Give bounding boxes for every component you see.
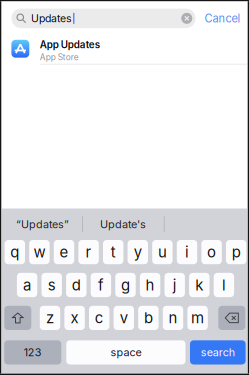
staticText: y [134, 243, 142, 261]
button[interactable]: App Updates [2, 28, 247, 64]
staticText: o [207, 243, 216, 261]
staticText: “Updates” [16, 218, 69, 231]
staticText: k [195, 276, 203, 294]
button[interactable]: Numbers [4, 340, 61, 364]
button[interactable]: p [226, 240, 246, 264]
button[interactable]: k [189, 273, 209, 297]
staticText: 123 [24, 346, 42, 359]
button[interactable]: a [17, 273, 37, 297]
staticText: n [168, 309, 177, 327]
button[interactable]: m [187, 306, 208, 330]
staticText: b [144, 309, 153, 327]
staticText: u [158, 243, 167, 261]
staticText: p [232, 243, 241, 261]
staticText: App Store [40, 52, 79, 62]
staticText: Update's [100, 218, 146, 231]
button[interactable]: Clear text [181, 13, 192, 24]
button[interactable]: j [164, 273, 185, 297]
button[interactable]: o [201, 240, 222, 264]
button[interactable]: Delete [218, 306, 245, 330]
staticText: App Updates [40, 39, 100, 51]
button[interactable]: e [54, 240, 74, 264]
button[interactable]: q [5, 240, 25, 264]
staticText: Updates [31, 12, 72, 25]
staticText: space [110, 346, 141, 359]
staticText: a [23, 276, 31, 294]
button[interactable]: r [78, 240, 99, 264]
staticText: g [121, 276, 130, 294]
button[interactable]: x [64, 306, 85, 330]
button[interactable]: l [214, 273, 234, 297]
button[interactable]: w [29, 240, 50, 264]
button[interactable]: t [103, 240, 123, 264]
button[interactable]: s [41, 273, 62, 297]
button[interactable]: g [115, 273, 136, 297]
staticText: v [120, 309, 128, 327]
staticText: w [33, 243, 45, 261]
staticText: l [222, 276, 226, 294]
button[interactable]: n [163, 306, 183, 330]
button[interactable]: Shift [4, 306, 31, 330]
button[interactable]: h [140, 273, 160, 297]
button[interactable]: d [66, 273, 86, 297]
staticText: j [173, 276, 177, 294]
staticText: f [98, 276, 104, 294]
button[interactable]: b [138, 306, 159, 330]
button[interactable]: i [177, 240, 197, 264]
staticText: z [46, 309, 54, 327]
staticText: d [72, 276, 81, 294]
button[interactable]: Update's [82, 209, 164, 239]
button[interactable]: f [91, 273, 111, 297]
staticText: i [185, 243, 189, 261]
staticText: m [191, 309, 204, 327]
staticText: s [48, 276, 56, 294]
button[interactable]: space [66, 340, 185, 364]
button[interactable]: search [190, 340, 246, 364]
button[interactable]: z [40, 306, 60, 330]
staticText: c [95, 309, 104, 327]
button[interactable]: u [152, 240, 173, 264]
staticText: Cancel [205, 12, 241, 25]
staticText: r [86, 243, 92, 261]
staticText: q [10, 243, 19, 261]
staticText: t [111, 243, 116, 261]
button[interactable]: Cancel [196, 9, 246, 28]
button[interactable]: v [114, 306, 134, 330]
button[interactable]: y [128, 240, 148, 264]
staticText: h [146, 276, 155, 294]
staticText: e [59, 243, 68, 261]
button[interactable]: “Updates” [2, 209, 82, 239]
staticText: search [201, 346, 235, 359]
staticText: x [71, 309, 79, 327]
button[interactable]: c [89, 306, 109, 330]
